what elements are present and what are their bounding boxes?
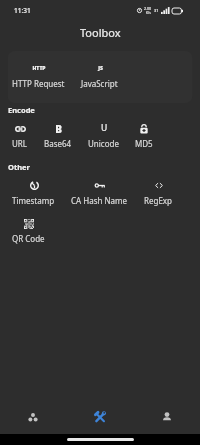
other: MD5 (140, 124, 148, 134)
staticText: U (101, 122, 108, 134)
staticText: QR Code (12, 233, 45, 244)
button[interactable]: B (36, 118, 80, 156)
staticText: Other (8, 162, 30, 172)
staticText: B (55, 122, 62, 135)
button[interactable]: Discover (0, 400, 66, 434)
other: CA Hash Name (95, 183, 105, 189)
staticText: Unicode (88, 138, 119, 149)
other: URL (15, 126, 26, 132)
other: RegExp (154, 182, 164, 189)
staticText: RegExp (144, 195, 173, 206)
staticText: URL (12, 138, 28, 149)
staticText: Toolbox (80, 25, 121, 40)
staticText: CA Hash Name (71, 195, 128, 206)
button[interactable]: CA Hash Name (63, 175, 136, 213)
button[interactable]: MD5 (127, 118, 161, 156)
staticText: 2.00 (144, 6, 152, 11)
other: QR Code (24, 219, 34, 229)
staticText: 31 (154, 8, 159, 13)
other: Timestamp (30, 181, 39, 190)
staticText: 11:31 (14, 6, 31, 15)
staticText: MD5 (135, 138, 153, 149)
staticText: JavaScript (81, 78, 118, 89)
button[interactable]: RegExp (136, 175, 181, 213)
staticText: K/s (146, 11, 151, 15)
staticText: HTTP Request (12, 78, 65, 89)
staticText: JS (98, 65, 103, 72)
button[interactable]: JS (73, 58, 126, 96)
button[interactable]: HTTP (4, 58, 73, 96)
staticText: Encode (8, 105, 35, 115)
button[interactable]: Tools (66, 400, 133, 434)
staticText: Timestamp (12, 195, 55, 206)
button[interactable]: U (80, 118, 127, 156)
button[interactable]: QR Code (4, 213, 53, 251)
button[interactable]: URL (4, 118, 36, 156)
staticText: HTTP (32, 65, 46, 72)
staticText: Base64 (44, 138, 72, 149)
button[interactable]: Timestamp (4, 175, 63, 213)
button[interactable]: Profile (133, 400, 200, 434)
